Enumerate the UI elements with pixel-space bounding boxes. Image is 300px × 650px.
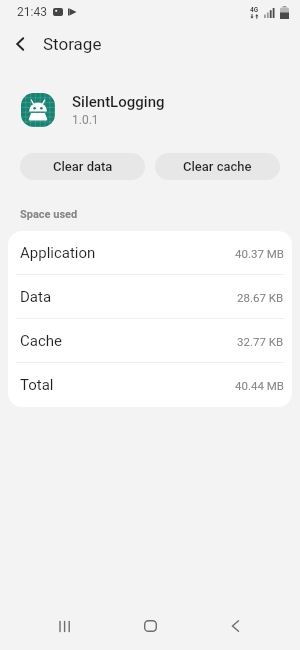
staticText: 1.0.1 (72, 113, 99, 127)
staticText: 21:43 (17, 5, 47, 19)
button[interactable] (51, 612, 79, 640)
button[interactable]: Application (8, 231, 292, 275)
staticText: 32.77 KB (237, 335, 284, 348)
staticText: Storage (43, 34, 102, 54)
button[interactable]: Cache (8, 319, 292, 363)
staticText: Clear cache (183, 159, 252, 174)
staticText: 40.37 MB (235, 247, 284, 260)
staticText: Total (20, 376, 54, 394)
button[interactable]: Clear data (20, 153, 145, 180)
button[interactable] (221, 612, 249, 640)
staticText: 40.44 MB (235, 379, 284, 392)
staticText: Data (20, 288, 52, 306)
button[interactable] (136, 612, 164, 640)
button[interactable]: Clear cache (155, 153, 280, 180)
staticText: SilentLogging (72, 93, 165, 111)
staticText: Cache (20, 332, 62, 350)
staticText: 28.67 KB (237, 291, 284, 304)
staticText: 4G (250, 6, 259, 14)
staticText: Clear data (53, 159, 113, 174)
button[interactable]: Total (8, 363, 292, 407)
button[interactable]: Data (8, 275, 292, 319)
staticText: Application (20, 244, 96, 262)
button[interactable] (0, 24, 40, 64)
staticText: Space used (20, 208, 78, 221)
